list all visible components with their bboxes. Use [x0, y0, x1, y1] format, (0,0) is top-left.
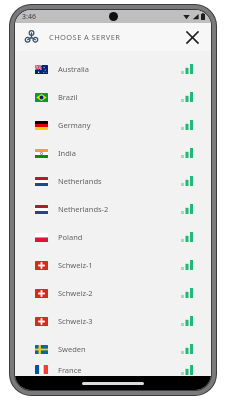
button[interactable]: Schweiz-3 — [15, 307, 211, 335]
button[interactable]: Sweden — [15, 335, 211, 363]
staticText: Netherlands — [58, 176, 102, 186]
button[interactable]: Australia — [15, 55, 211, 83]
staticText: Schweiz-1 — [58, 260, 93, 270]
staticText: India — [58, 148, 76, 158]
staticText: CHOOSE A SERVER — [49, 32, 121, 42]
staticText: Netherlands-2 — [58, 204, 109, 214]
button[interactable]: Brazil — [15, 83, 211, 111]
staticText: Schweiz-3 — [58, 316, 93, 326]
other: Signal strength — [181, 176, 193, 186]
other: Signal strength — [181, 316, 193, 326]
button[interactable]: Schweiz-2 — [15, 279, 211, 307]
staticText: Poland — [58, 232, 83, 242]
staticText: Schweiz-2 — [58, 288, 93, 298]
other: Signal strength — [181, 148, 193, 158]
other: Signal strength — [181, 232, 193, 242]
other: Signal strength — [181, 260, 193, 270]
other: Signal strength — [181, 92, 193, 102]
button[interactable]: Schweiz-1 — [15, 251, 211, 279]
button[interactable]: Germany — [15, 111, 211, 139]
button[interactable]: Netherlands-2 — [15, 195, 211, 223]
staticText: 3:46 — [22, 12, 36, 22]
staticText: France — [58, 365, 82, 375]
staticText: Australia — [58, 64, 89, 74]
other: Signal strength — [181, 344, 193, 354]
button[interactable]: Netherlands — [15, 167, 211, 195]
other: Signal strength — [181, 64, 193, 74]
other: Signal strength — [181, 120, 193, 130]
other: Signal strength — [181, 204, 193, 214]
other: Signal strength — [181, 288, 193, 298]
staticText: Germany — [58, 120, 91, 130]
button[interactable]: Poland — [15, 223, 211, 251]
staticText: Sweden — [58, 344, 86, 354]
button[interactable]: Close — [182, 27, 202, 47]
other: Signal strength — [181, 365, 193, 375]
button[interactable]: India — [15, 139, 211, 167]
staticText: Brazil — [58, 92, 78, 102]
button[interactable]: France — [15, 363, 211, 376]
